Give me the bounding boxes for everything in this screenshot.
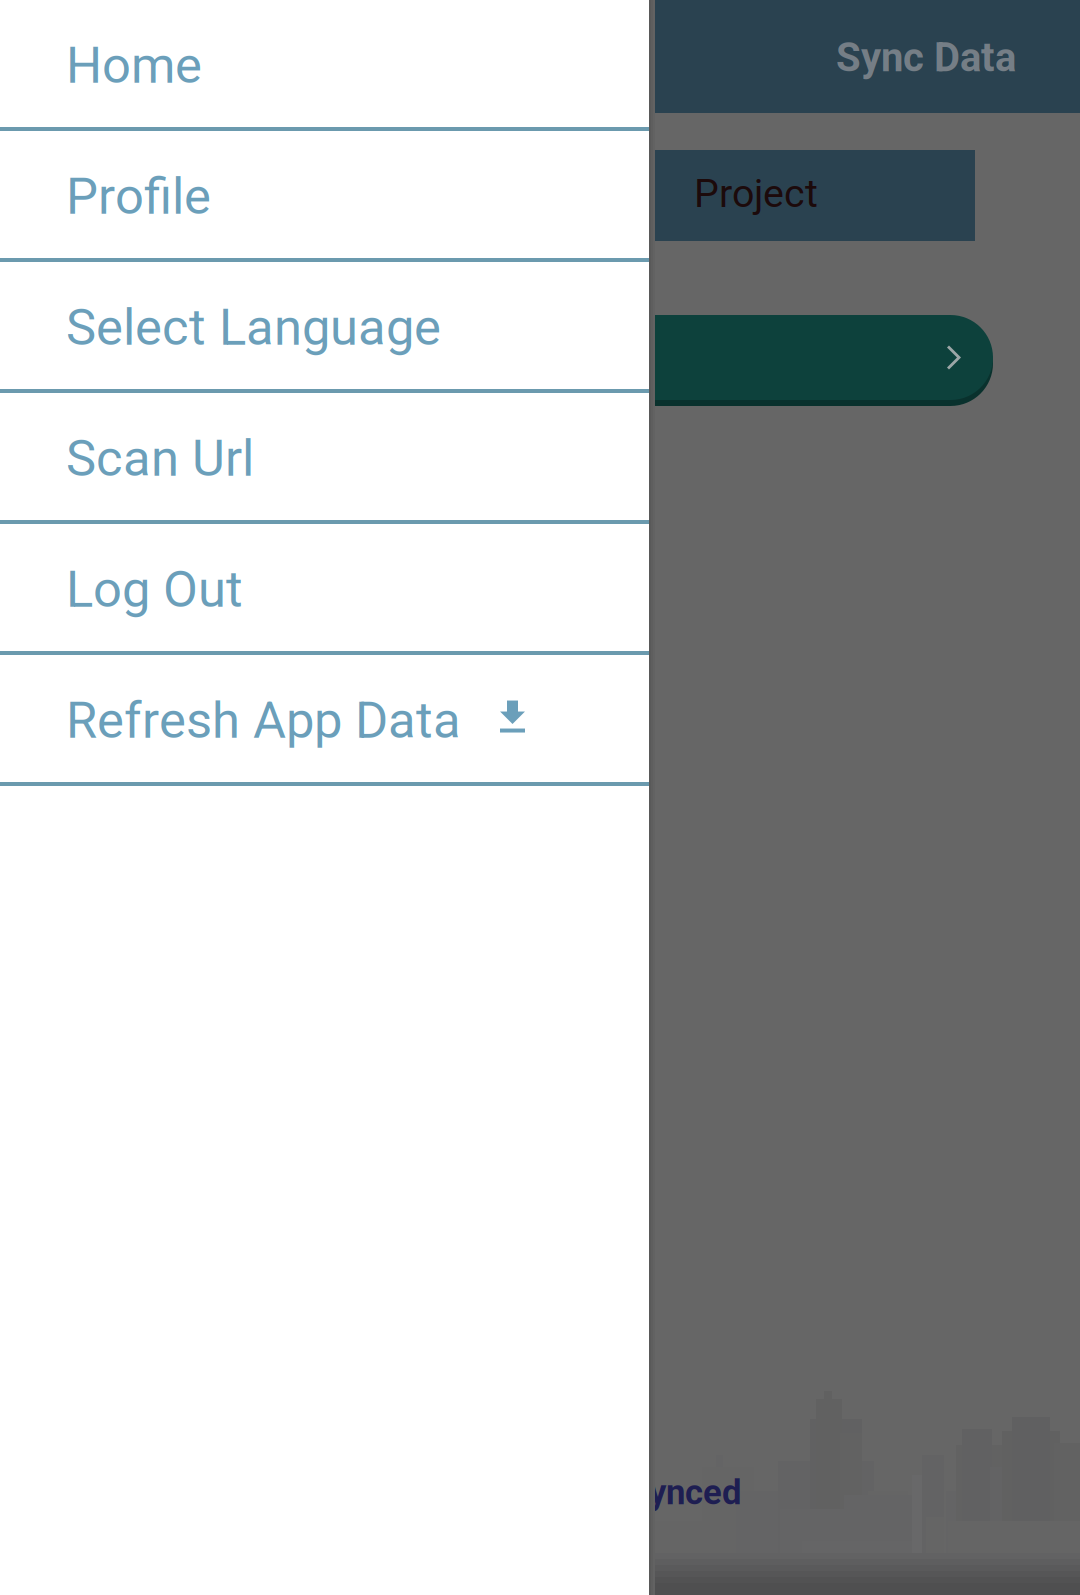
button[interactable]: Scan Url: [0, 393, 649, 524]
staticText: Project: [694, 170, 818, 217]
staticText: Log Out: [66, 560, 243, 619]
button[interactable]: Project: [0, 150, 975, 241]
staticText: Home: [66, 36, 202, 95]
staticText: Profile: [66, 167, 211, 226]
button[interactable]: Home: [0, 0, 649, 131]
button[interactable]: Start sync: [0, 315, 993, 400]
staticText: Refresh App Data: [66, 691, 461, 750]
button[interactable]: Select Language: [0, 262, 649, 393]
button[interactable]: Log Out: [0, 524, 649, 655]
staticText: Sync Data: [836, 34, 1016, 81]
button[interactable]: Profile: [0, 131, 649, 262]
staticText: Last synced: [554, 1472, 742, 1513]
staticText: Scan Url: [66, 429, 254, 488]
button[interactable]: Refresh App Data: [0, 655, 649, 786]
staticText: Select Language: [66, 298, 441, 357]
